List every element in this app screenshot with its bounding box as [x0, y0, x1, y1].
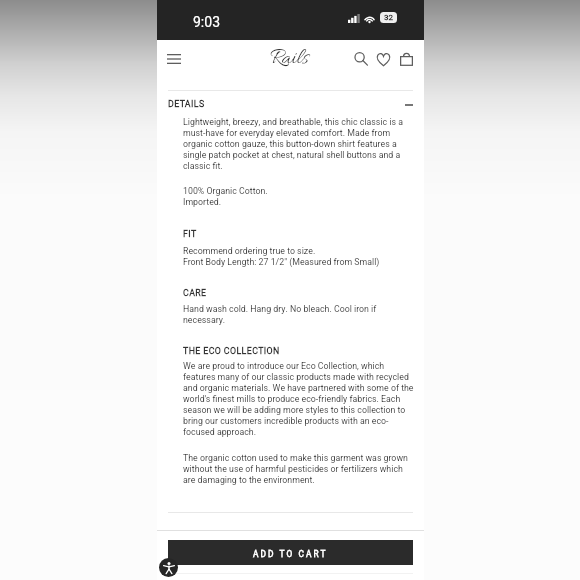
staticText: ADD TO CART — [253, 548, 328, 560]
button[interactable]: Accessibility options — [159, 558, 178, 577]
staticText: DETAILS — [168, 98, 205, 111]
staticText: The organic cotton used to make this gar… — [183, 452, 416, 486]
staticText: Recommend ordering true to size. Front B… — [183, 245, 380, 268]
button[interactable]: Menu — [158, 36, 190, 81]
button[interactable]: ADD TO CART — [168, 540, 413, 565]
staticText: We are proud to introduce our Eco Collec… — [183, 360, 416, 438]
staticText: FIT — [183, 228, 197, 241]
staticText: 9:03 — [193, 12, 221, 33]
staticText: Hand wash cold. Hang dry. No bleach. Coo… — [183, 303, 416, 326]
staticText: CARE — [183, 287, 207, 300]
button[interactable]: Wishlist — [372, 42, 395, 76]
button[interactable]: Search — [349, 42, 372, 76]
button[interactable]: Shopping bag — [395, 42, 418, 76]
staticText: Lightweight, breezy, and breathable, thi… — [183, 116, 416, 172]
staticText: Rails — [270, 45, 309, 73]
staticText: 32 — [384, 12, 393, 23]
button[interactable]: DETAILS — [157, 93, 424, 116]
staticText: 100% Organic Cotton. Imported. — [183, 185, 268, 208]
staticText: THE ECO COLLECTION — [183, 345, 280, 358]
